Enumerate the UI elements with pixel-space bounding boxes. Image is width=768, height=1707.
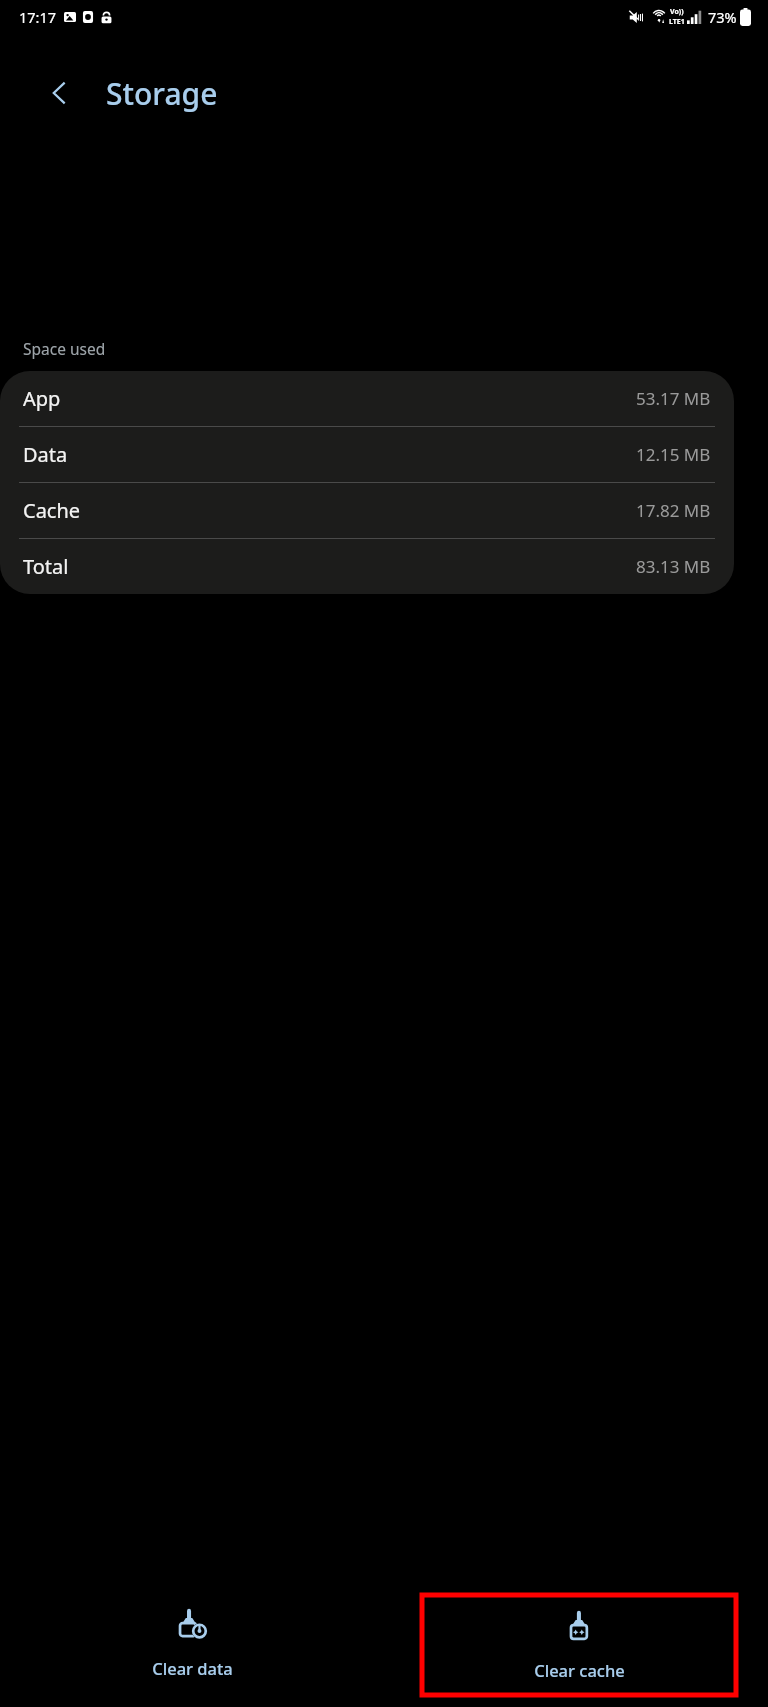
staticText: 17.82 MB (636, 499, 711, 522)
staticText: LTE1 (669, 17, 685, 27)
staticText: Vo)) (670, 7, 684, 17)
staticText: 12.15 MB (636, 443, 711, 466)
staticText: Clear data (152, 1657, 233, 1679)
button[interactable]: Back (34, 67, 86, 119)
staticText: Total (23, 553, 69, 580)
staticText: 73% (708, 7, 737, 27)
staticText: Data (23, 441, 68, 468)
button[interactable]: Data (0, 427, 734, 482)
button[interactable]: Cache (0, 483, 734, 538)
staticText: Cache (23, 497, 81, 524)
button[interactable]: Clear cache (422, 1595, 736, 1695)
button[interactable]: Total (0, 539, 734, 594)
staticText: App (23, 385, 61, 412)
button[interactable]: Clear data (0, 1579, 384, 1707)
staticText: Storage (106, 73, 218, 114)
button[interactable]: App (0, 371, 734, 426)
staticText: Space used (23, 338, 106, 359)
staticText: 17:17 (19, 7, 57, 27)
staticText: Clear cache (534, 1659, 625, 1681)
staticText: 53.17 MB (636, 387, 711, 410)
staticText: 83.13 MB (636, 555, 711, 578)
